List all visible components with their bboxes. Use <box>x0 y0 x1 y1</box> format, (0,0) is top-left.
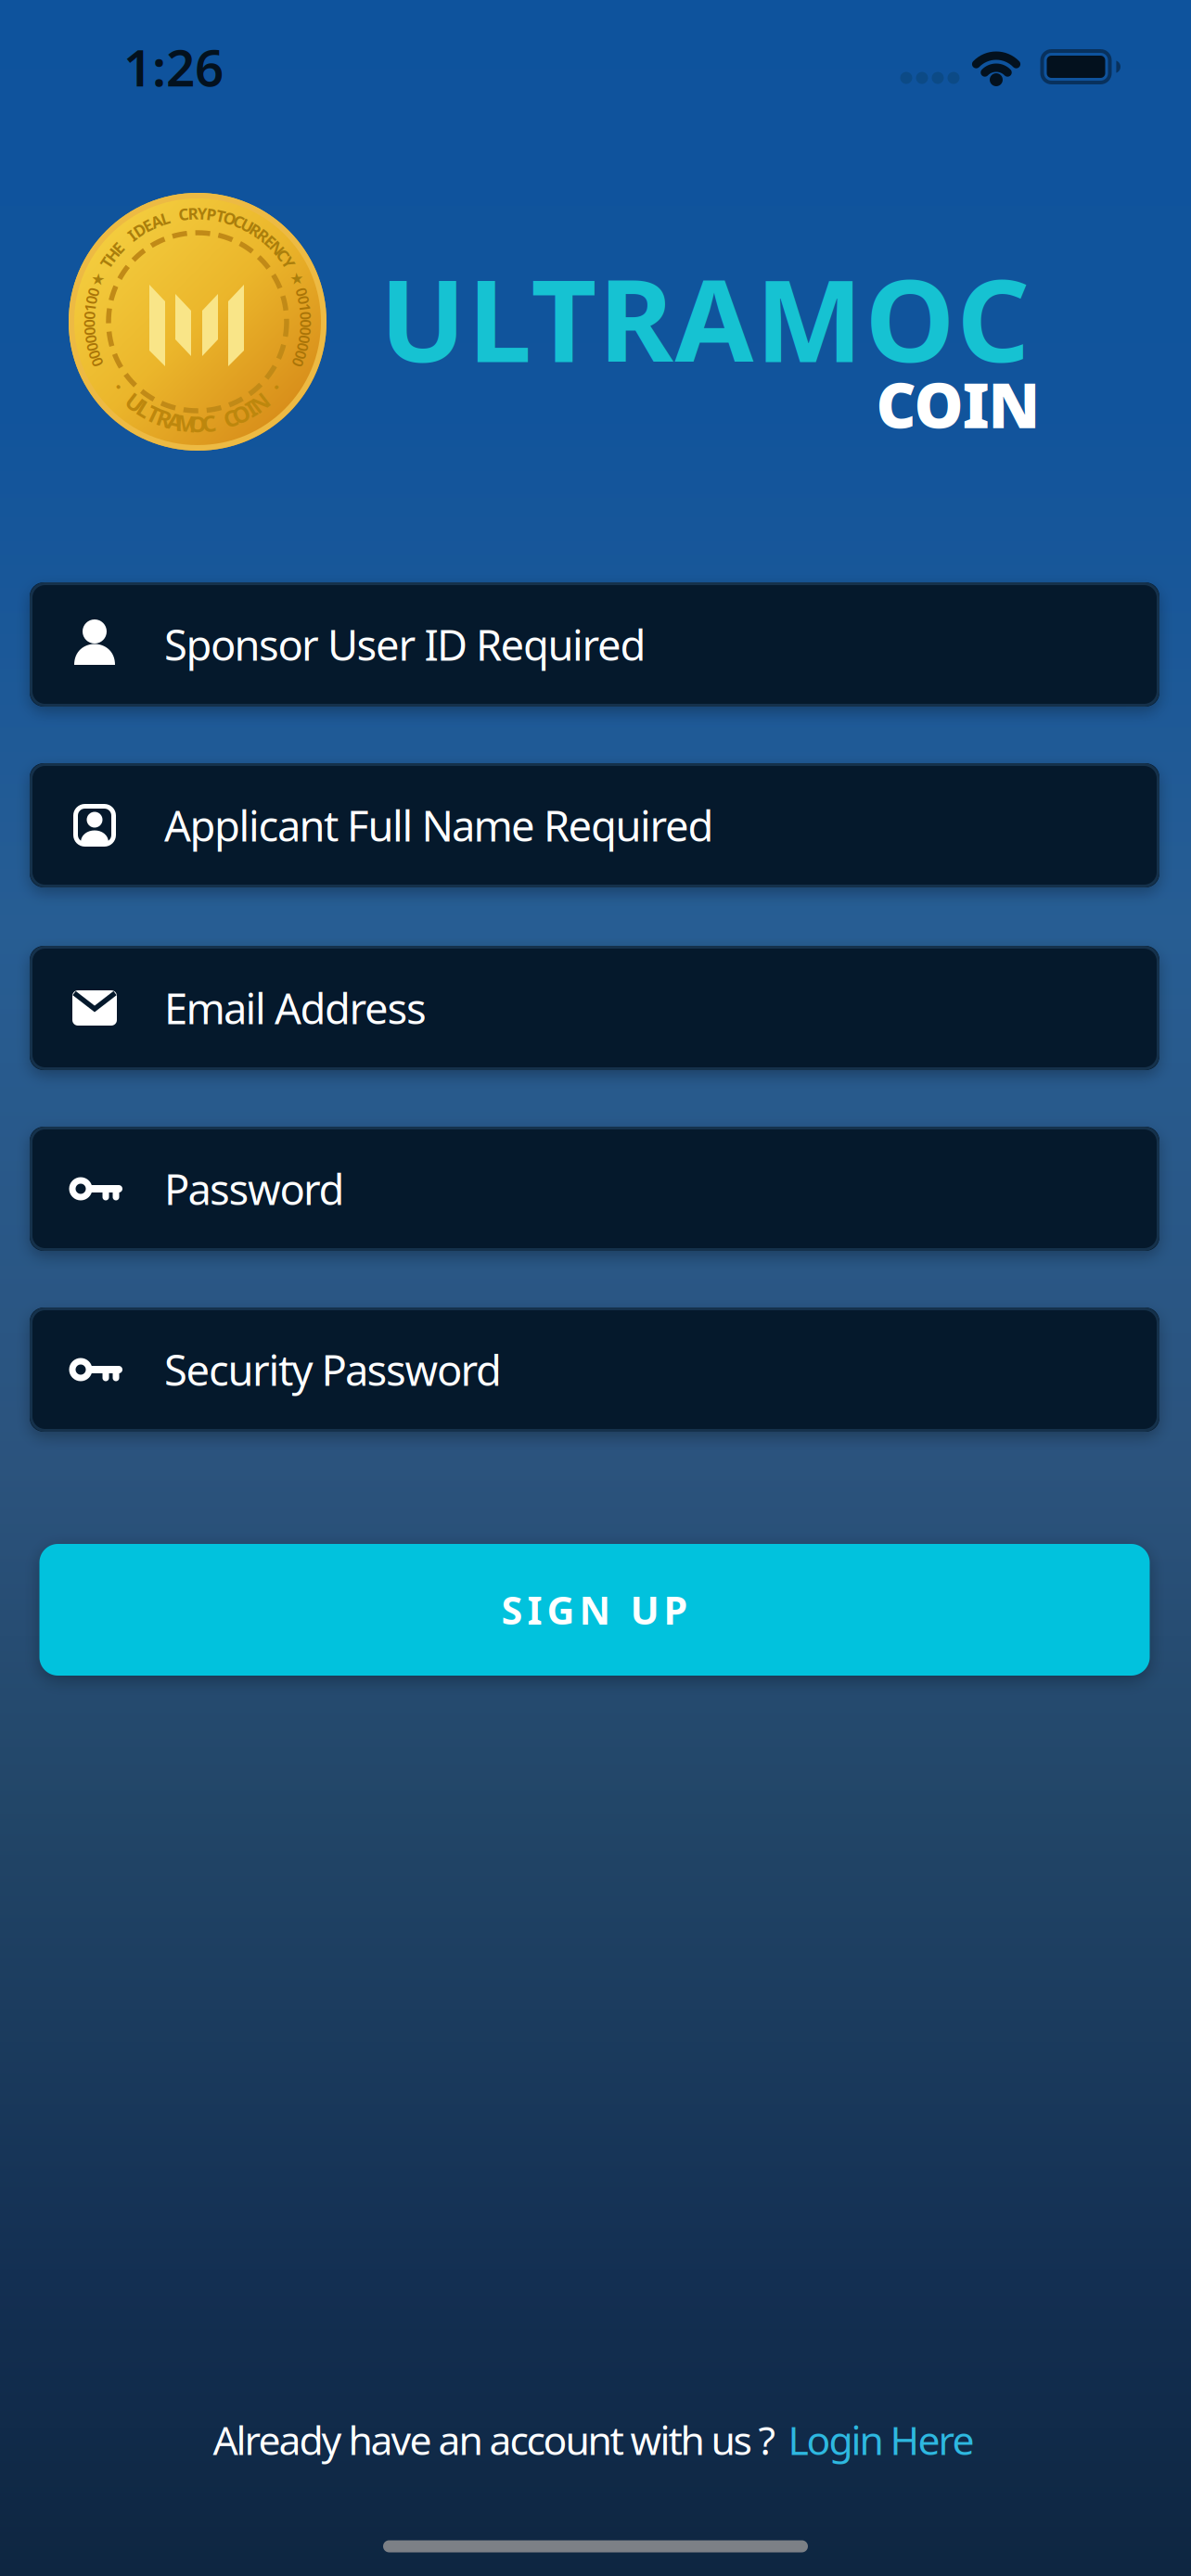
staticText: 0 <box>302 314 310 333</box>
staticText: 0 <box>87 290 95 310</box>
staticText: 0 <box>90 345 98 365</box>
staticText: 0 <box>88 337 96 357</box>
staticText: N <box>270 237 283 258</box>
staticText: 0 <box>89 282 97 302</box>
staticText: E <box>143 215 153 236</box>
staticText: R <box>188 203 198 224</box>
staticText: SIGN UP <box>501 1584 688 1635</box>
staticText: · <box>273 372 279 402</box>
staticText: ★ <box>90 270 105 288</box>
staticText <box>266 380 271 410</box>
staticText: 0 <box>302 306 310 325</box>
staticText: Applicant Full Name Required <box>164 797 714 853</box>
staticText: · <box>116 372 122 402</box>
staticText: E <box>266 231 275 252</box>
staticText: C <box>202 408 216 438</box>
staticText: O <box>189 409 206 439</box>
staticText: U <box>241 215 253 236</box>
staticText: 0 <box>299 337 307 357</box>
staticText: Y <box>283 252 294 273</box>
staticText <box>123 231 127 252</box>
staticText: C <box>178 204 189 225</box>
staticText: COIN <box>876 363 1040 445</box>
staticText: 0 <box>86 329 95 349</box>
staticText: A <box>151 211 162 232</box>
staticText: T <box>102 252 111 273</box>
staticText: 0 <box>300 290 308 310</box>
button[interactable]: Password <box>30 1127 1159 1251</box>
staticText: Password <box>164 1161 345 1217</box>
staticText: 1 <box>86 298 94 317</box>
staticText: 0 <box>85 322 94 341</box>
staticText: Email Address <box>164 980 427 1036</box>
staticText: O <box>232 399 250 429</box>
staticText: P <box>206 204 217 225</box>
staticText: E <box>114 237 123 258</box>
staticText: ULTRAMOC <box>380 243 1030 394</box>
staticText: H <box>106 244 118 266</box>
staticText: Already have an account with us ? <box>213 2413 776 2466</box>
staticText: R <box>157 403 172 433</box>
staticText: 0 <box>85 306 93 325</box>
staticText: T <box>148 399 161 429</box>
staticText: R <box>258 225 268 246</box>
staticText: 0 <box>301 322 310 341</box>
staticText <box>217 407 223 436</box>
staticText: D <box>134 219 146 241</box>
staticText: 0 <box>301 329 309 349</box>
staticText: I <box>247 394 255 424</box>
staticText: I <box>129 225 135 246</box>
staticText: ★ <box>290 270 305 288</box>
button[interactable]: Email Address <box>30 946 1159 1070</box>
button[interactable]: Login Here <box>788 2413 974 2466</box>
staticText <box>291 260 296 281</box>
button[interactable]: Applicant Full Name Required <box>30 763 1159 887</box>
staticText: L <box>138 394 150 424</box>
staticText: 0 <box>294 352 302 372</box>
button[interactable]: SIGN UP <box>39 1544 1150 1676</box>
staticText: Security Password <box>164 1342 502 1398</box>
staticText: M <box>176 408 197 438</box>
staticText: Login Here <box>788 2413 974 2466</box>
staticText: N <box>251 388 269 417</box>
staticText: Y <box>197 203 207 224</box>
button[interactable]: Security Password <box>30 1307 1159 1432</box>
staticText: T <box>216 205 225 226</box>
staticText: C <box>224 403 238 433</box>
staticText: R <box>250 219 260 241</box>
staticText <box>124 380 129 410</box>
staticText: C <box>278 244 288 266</box>
staticText: 0 <box>93 352 101 372</box>
staticText: O <box>223 208 236 229</box>
staticText: 0 <box>85 314 93 333</box>
staticText <box>100 260 104 281</box>
staticText: 0 <box>297 345 305 365</box>
staticText: 0 <box>298 282 306 302</box>
staticText: A <box>167 407 183 436</box>
staticText: L <box>161 208 170 229</box>
staticText: C <box>234 211 244 232</box>
staticText: Sponsor User ID Required <box>164 617 646 672</box>
button[interactable]: Sponsor User ID Required <box>30 582 1159 707</box>
staticText: U <box>127 388 143 417</box>
staticText: 1 <box>301 298 309 317</box>
staticText: 1:26 <box>123 33 224 100</box>
